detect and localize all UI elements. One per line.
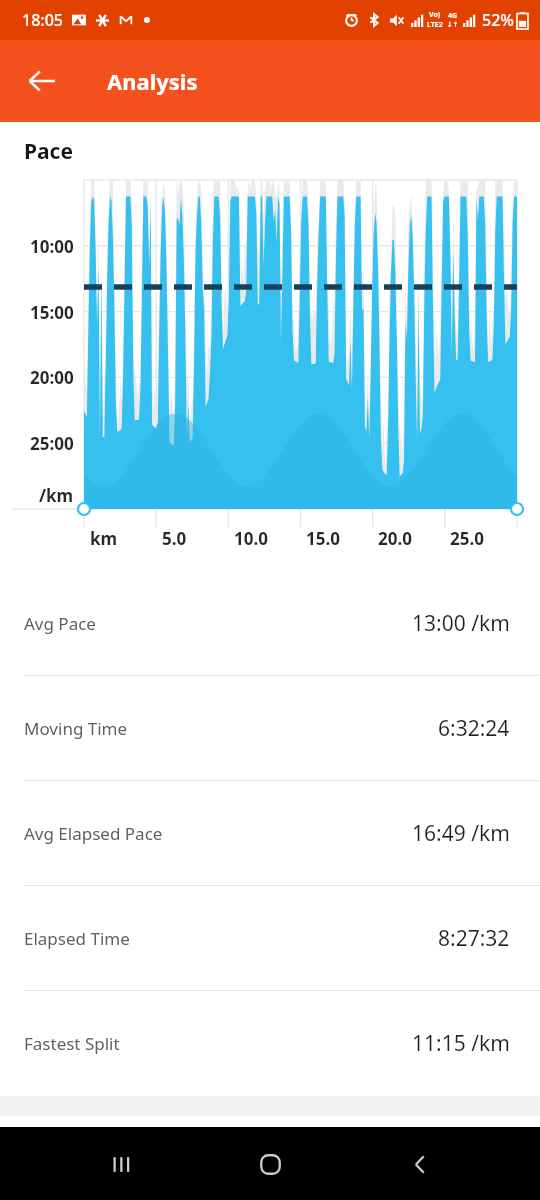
staticText: 10.0 [234,527,268,550]
staticText: 18:05 [22,9,63,31]
staticText: 15.0 [306,527,340,550]
button[interactable]: Avg Elapsed Pace [0,781,540,886]
staticText: /km [39,484,74,507]
staticText: Avg Elapsed Pace [24,822,163,845]
staticText: Pace [24,137,73,166]
button[interactable]: Back [13,52,71,110]
staticText: Fastest Split [24,1032,120,1055]
staticText: ↓↑ [447,21,459,29]
button[interactable]: Home [241,1135,299,1193]
staticText: LTE2 [427,20,443,30]
button[interactable]: Elapsed Time [0,886,540,991]
staticText: 10:00 [30,235,74,258]
staticText: Vo) [429,10,441,20]
staticText: Avg Pace [24,612,96,635]
button[interactable]: Avg Pace [0,571,540,676]
staticText: 4G [448,11,458,21]
staticText: 20.0 [378,527,412,550]
staticText: 8:27:32 [438,924,510,953]
staticText: 15:00 [30,301,74,324]
staticText: 6:32:24 [438,714,510,743]
staticText: Analysis [107,66,198,96]
button[interactable]: Fastest Split [0,991,540,1096]
staticText: 20:00 [30,366,74,389]
staticText: 5.0 [162,527,187,550]
staticText: 25:00 [30,432,74,455]
staticText: Elapsed Time [24,927,130,950]
button[interactable]: Back [391,1135,449,1193]
staticText: km [90,527,118,550]
button[interactable]: Recent apps [92,1135,150,1193]
staticText: 52% [482,9,514,31]
staticText: 13:00 /km [412,609,510,638]
staticText: Moving Time [24,717,128,740]
staticText: 25.0 [450,527,484,550]
staticText: 11:15 /km [412,1029,510,1058]
button[interactable]: Moving Time [0,676,540,781]
staticText: 16:49 /km [412,819,510,848]
